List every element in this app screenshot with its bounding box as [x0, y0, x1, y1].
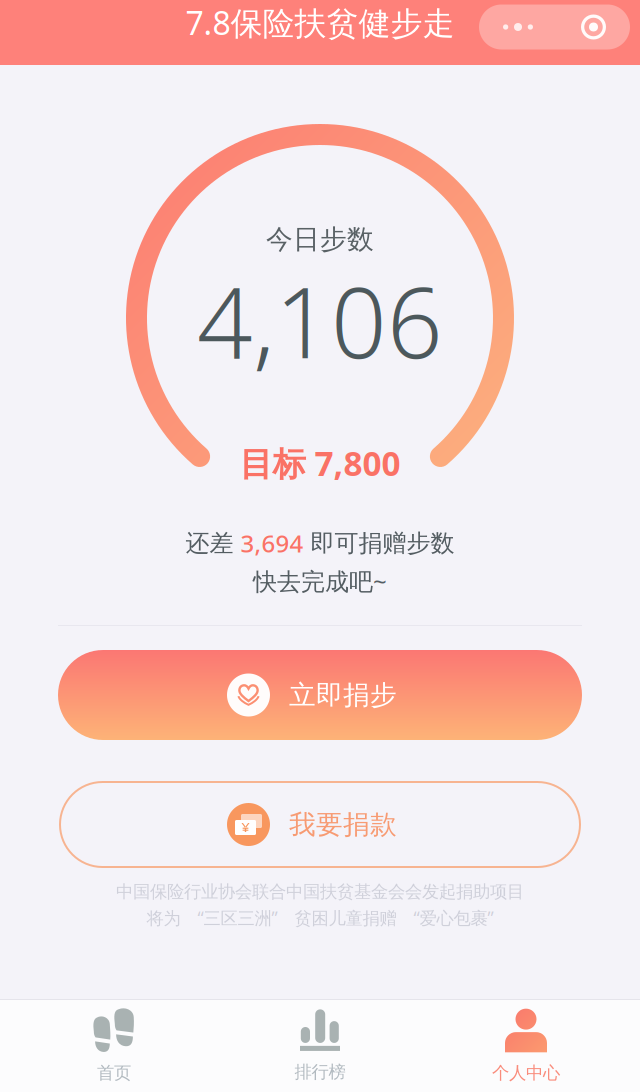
- staticText: 首页: [97, 1062, 131, 1084]
- staticText: 即可捐赠步数: [303, 528, 454, 558]
- staticText: 个人中心: [492, 1062, 560, 1084]
- staticText: 今日步数: [266, 223, 374, 256]
- staticText: 4,106: [197, 256, 443, 385]
- button[interactable]: More: [479, 4, 557, 49]
- button[interactable]: 首页: [11, 1000, 217, 1092]
- staticText: 中国保险行业协会联合中国扶贫基金会会发起捐助项目: [116, 881, 524, 902]
- staticText: 7.8保险扶贫健步走: [185, 1, 454, 44]
- staticText: 快去完成吧~: [253, 565, 387, 597]
- staticText: 将为 “三区三洲” 贫困儿童捐赠 “爱心包裹”: [146, 906, 493, 929]
- staticText: 3,694: [240, 527, 303, 559]
- button[interactable]: 立即捐步: [58, 650, 582, 740]
- button[interactable]: 个人中心: [423, 1000, 629, 1092]
- staticText: 还差: [185, 528, 240, 558]
- staticText: 我要捐款: [289, 808, 397, 841]
- button[interactable]: 我要捐款: [60, 782, 580, 867]
- staticText: 立即捐步: [289, 679, 397, 711]
- button[interactable]: Close mini program: [557, 4, 630, 49]
- button[interactable]: 排行榜: [217, 1000, 423, 1092]
- staticText: 目标 7,800: [239, 441, 400, 485]
- staticText: 排行榜: [294, 1061, 345, 1083]
